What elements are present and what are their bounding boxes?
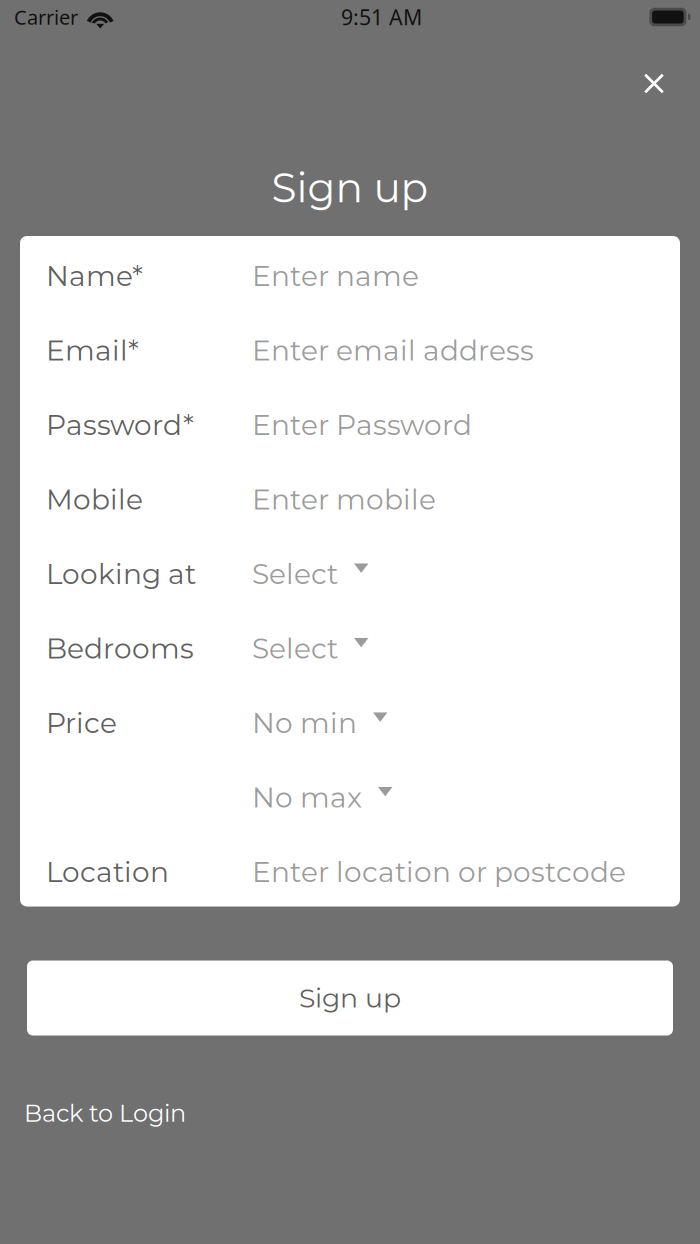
staticText: Sign up	[271, 163, 428, 213]
staticText: Sign up	[299, 982, 401, 1014]
staticText: Select	[252, 557, 338, 591]
button[interactable]: Back to Login	[24, 1098, 186, 1128]
staticText: No min	[252, 706, 357, 740]
staticText: Location	[46, 855, 169, 889]
button[interactable]: Sign up	[27, 960, 673, 1035]
staticText: Looking at	[46, 557, 196, 591]
staticText: Mobile	[46, 482, 143, 516]
staticText: Carrier	[14, 4, 78, 30]
staticText: Password*	[46, 408, 194, 442]
button[interactable]: Mobile	[20, 459, 680, 534]
staticText: Back to Login	[24, 1098, 186, 1128]
button[interactable]: Close	[625, 54, 683, 112]
staticText: Select	[252, 631, 338, 665]
staticText: Email*	[46, 333, 139, 367]
button[interactable]: Bedrooms	[20, 608, 680, 683]
staticText: Enter location or postcode	[252, 855, 626, 889]
staticText: Enter email address	[252, 333, 534, 367]
button[interactable]: Location	[20, 832, 680, 906]
staticText: Price	[46, 706, 117, 740]
staticText: Enter name	[252, 259, 419, 293]
staticText: Bedrooms	[46, 631, 194, 665]
button[interactable]: Email*	[20, 310, 680, 385]
staticText: Enter Password	[252, 408, 472, 442]
button[interactable]	[20, 757, 680, 832]
staticText: Enter mobile	[252, 482, 436, 516]
staticText: No max	[252, 780, 362, 814]
staticText: 9:51 AM	[341, 3, 422, 31]
button[interactable]: Looking at	[20, 534, 680, 608]
staticText: Name*	[46, 259, 143, 293]
button[interactable]: Name*	[20, 236, 680, 310]
button[interactable]: Price	[20, 683, 680, 757]
button[interactable]: Password*	[20, 385, 680, 459]
